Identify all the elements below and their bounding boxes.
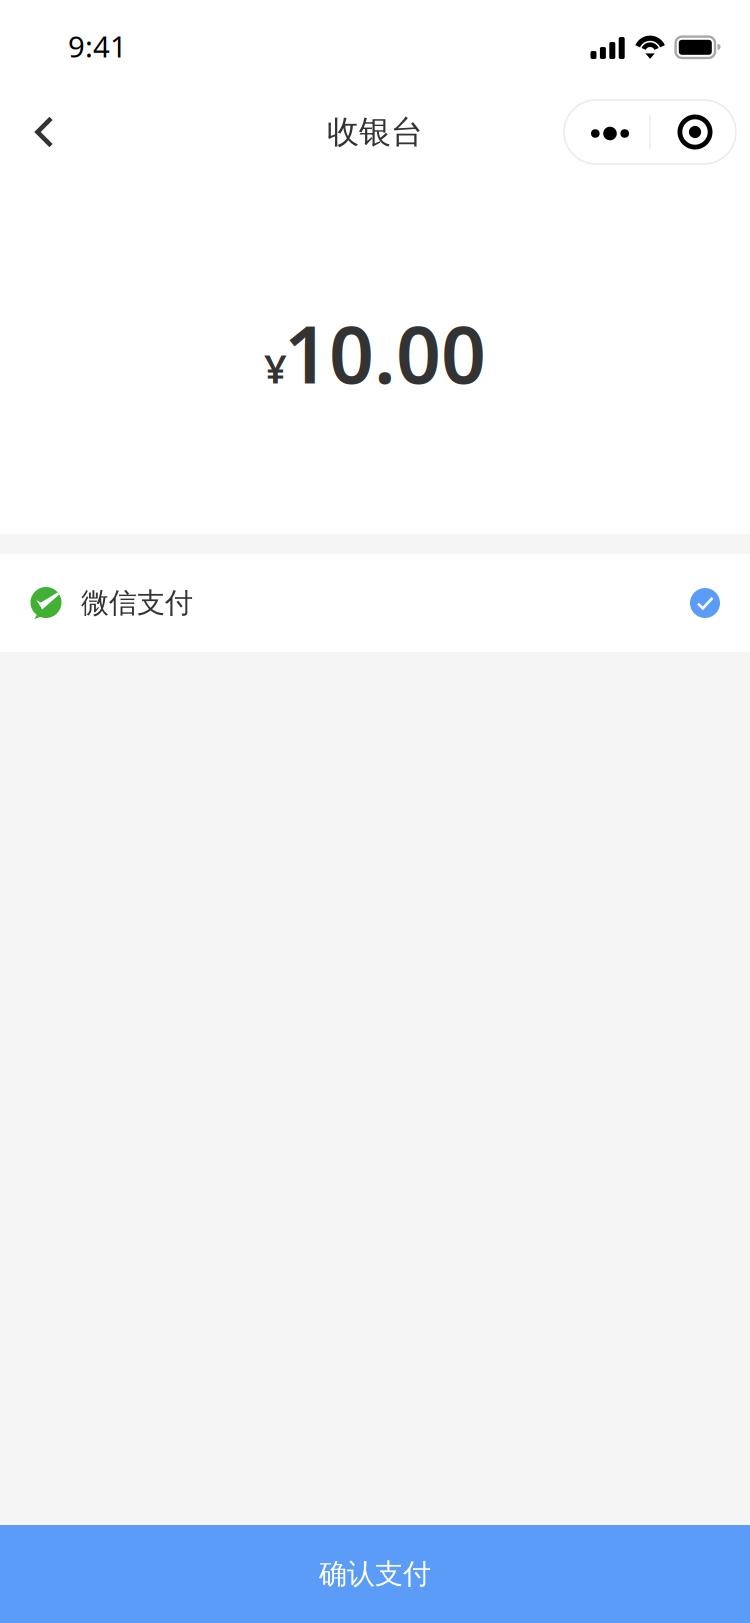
staticText: 10.00	[284, 301, 486, 405]
button[interactable]: 微信支付	[0, 554, 750, 652]
button[interactable]: 确认支付	[0, 1525, 750, 1623]
button[interactable]: Close mini program	[650, 100, 736, 164]
staticText: 收银台	[327, 112, 423, 152]
button[interactable]: Back	[0, 88, 88, 176]
button[interactable]: More	[564, 100, 650, 164]
staticText: 确认支付	[319, 1557, 431, 1591]
staticText: ¥	[264, 341, 287, 394]
staticText: 微信支付	[81, 586, 193, 620]
staticText: 9:41	[68, 26, 127, 65]
